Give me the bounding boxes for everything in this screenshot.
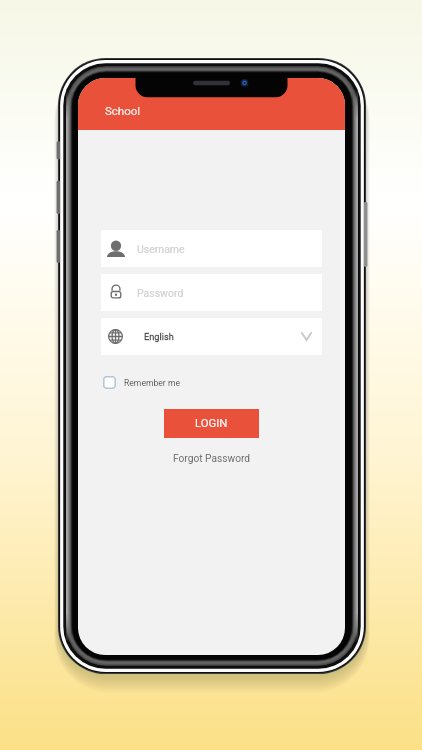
staticText: School [105,104,141,117]
staticText: Remember me [124,378,181,388]
button[interactable]: Username [101,230,322,267]
staticText: Password [137,287,184,299]
button[interactable]: English [101,318,322,355]
button[interactable]: Password [101,274,322,311]
staticText: Username [137,243,185,255]
button[interactable]: LOGIN [164,409,259,438]
staticText: English [144,331,174,342]
button[interactable]: Remember me [103,376,181,389]
button[interactable]: Choose language [301,332,312,341]
button[interactable]: Forgot Password [173,453,251,465]
staticText: LOGIN [195,417,228,430]
